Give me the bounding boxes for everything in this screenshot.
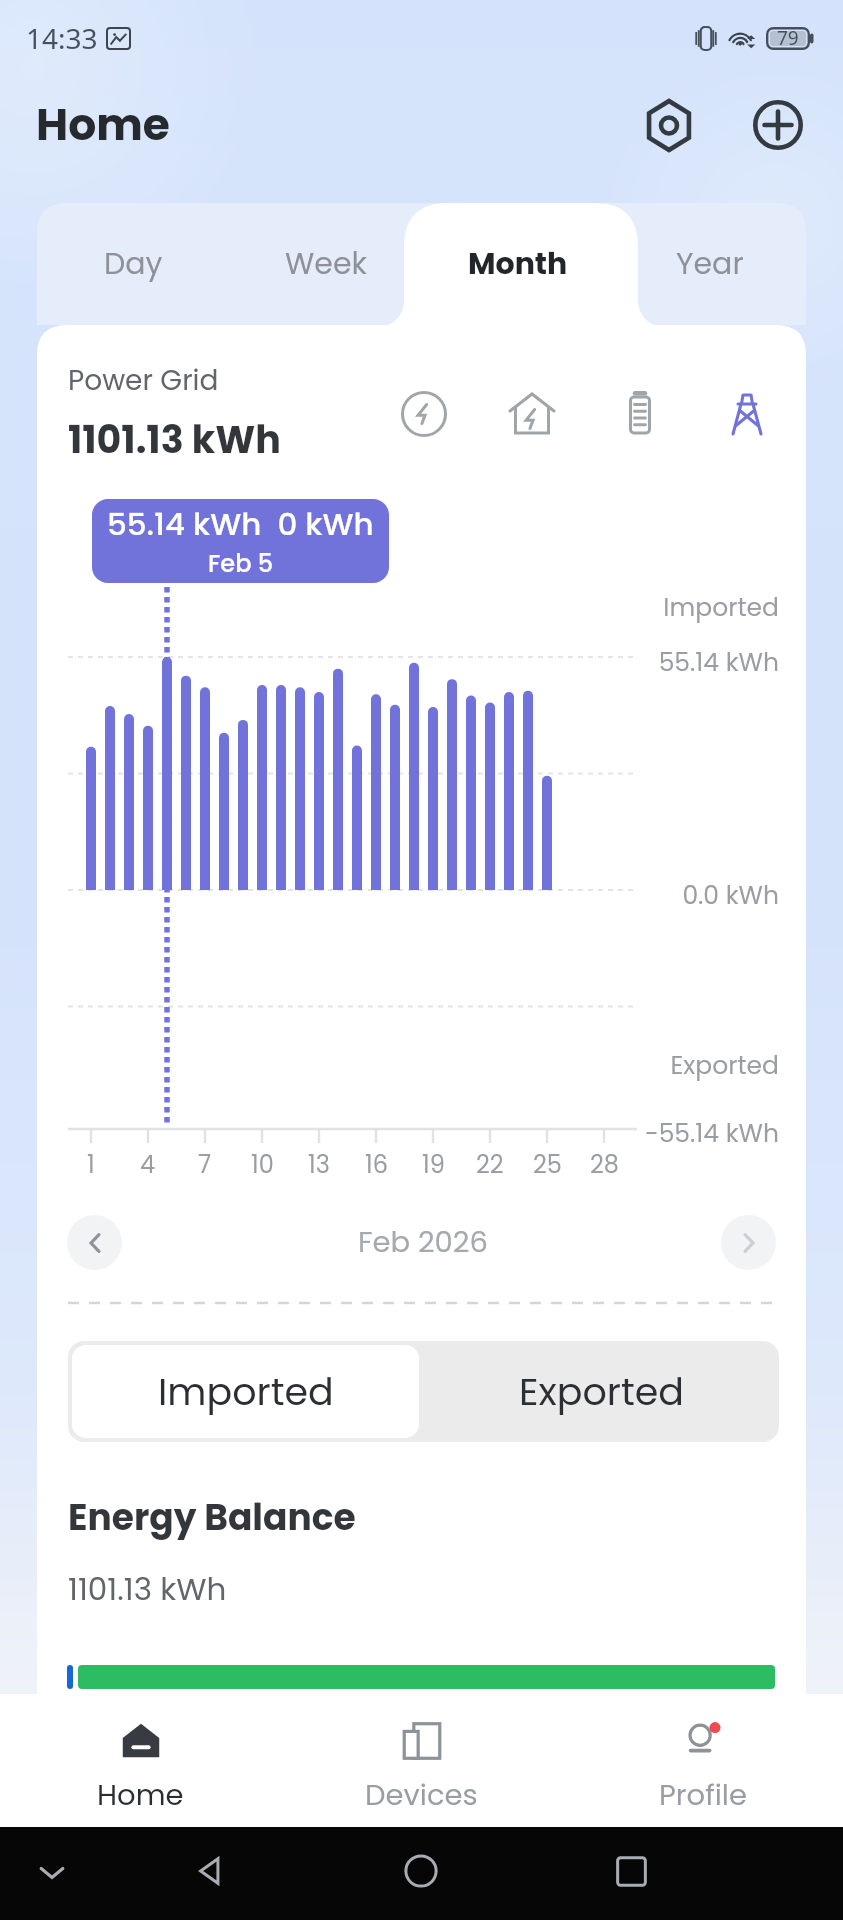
button[interactable]: Next month — [721, 1215, 776, 1270]
button[interactable]: Exported — [423, 1341, 779, 1442]
button[interactable]: Profile — [562, 1694, 843, 1827]
button[interactable]: Back — [188, 1849, 232, 1893]
staticText: Exported — [519, 1365, 684, 1418]
button[interactable]: Previous month — [67, 1215, 122, 1270]
staticText: Devices — [365, 1775, 478, 1816]
staticText: 55.14 kWh 0 kWh — [107, 502, 374, 545]
button[interactable]: Week — [230, 203, 422, 325]
staticText: Home — [36, 94, 170, 156]
button[interactable]: Solar — [396, 386, 452, 442]
button[interactable]: Add device — [747, 94, 809, 156]
staticText: Week — [285, 243, 367, 285]
staticText: 10 — [251, 1148, 274, 1182]
staticText: 25 — [533, 1148, 562, 1182]
staticText: 79 — [777, 25, 799, 51]
staticText: 4 — [140, 1148, 156, 1182]
staticText: Imported — [663, 590, 779, 625]
staticText: Day — [104, 243, 163, 285]
staticText: 13 — [308, 1148, 330, 1182]
button[interactable]: Day — [37, 203, 230, 325]
button[interactable]: Month — [422, 203, 614, 325]
staticText: Feb 5 — [208, 547, 274, 581]
staticText: Profile — [659, 1775, 747, 1816]
staticText: 14:33 — [26, 19, 98, 57]
button[interactable]: Devices — [281, 1694, 562, 1827]
staticText: -55.14 kWh — [644, 1116, 779, 1151]
staticText: Exported — [670, 1048, 779, 1083]
button[interactable]: Imported — [72, 1345, 419, 1438]
staticText: 55.14 kWh — [658, 645, 779, 680]
staticText: 1 — [87, 1148, 95, 1182]
button[interactable]: Battery — [612, 386, 668, 442]
staticText: 0.0 kWh — [682, 878, 779, 913]
staticText: 16 — [365, 1148, 388, 1182]
staticText: Month — [468, 243, 568, 285]
staticText: 1101.13 kWh — [68, 1567, 227, 1610]
button[interactable]: Year — [614, 203, 806, 325]
staticText: Imported — [158, 1365, 334, 1418]
staticText: 28 — [590, 1148, 619, 1182]
staticText: Feb 2026 — [358, 1222, 488, 1263]
button[interactable]: Home — [399, 1849, 443, 1893]
button[interactable]: Grid — [719, 386, 775, 442]
button[interactable]: Home — [0, 1694, 281, 1827]
button[interactable]: Home energy — [504, 386, 560, 442]
staticText: 22 — [476, 1148, 504, 1182]
button[interactable]: Settings — [638, 94, 700, 156]
staticText: Home — [97, 1775, 184, 1816]
button[interactable]: Recent apps — [609, 1849, 653, 1893]
staticText: Power Grid — [68, 361, 219, 400]
staticText: Energy Balance — [68, 1492, 356, 1542]
staticText: 1101.13 kWh — [68, 413, 281, 466]
staticText: 7 — [198, 1148, 212, 1182]
staticText: 19 — [422, 1148, 445, 1182]
staticText: Year — [676, 243, 744, 285]
